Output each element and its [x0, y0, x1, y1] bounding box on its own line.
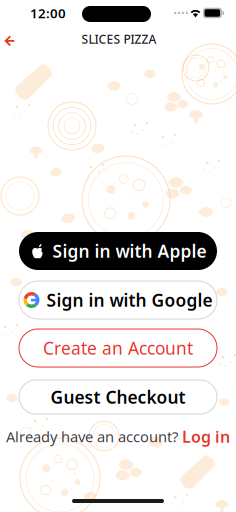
button[interactable]: Back [0, 32, 24, 54]
button[interactable]: Sign in with Apple [19, 232, 217, 270]
button[interactable]: Sign in with Google [19, 281, 217, 319]
staticText: Log in [182, 426, 230, 447]
button[interactable]: Guest Checkout [19, 380, 217, 414]
button[interactable]: Create an Account [19, 329, 217, 367]
staticText: Already have an account? [6, 427, 178, 446]
button[interactable]: Log in [182, 426, 230, 447]
staticText: Sign in with Apple [52, 239, 206, 262]
staticText: 12:00 [30, 4, 66, 22]
staticText: Create an Account [43, 336, 193, 359]
staticText: Guest Checkout [50, 385, 185, 408]
staticText: Sign in with Google [46, 288, 212, 311]
staticText: SLICES PIZZA [81, 31, 156, 47]
